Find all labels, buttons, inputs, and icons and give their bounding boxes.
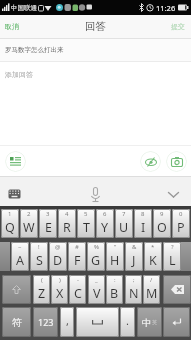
staticText: R (63, 219, 71, 236)
staticText: G (91, 252, 101, 269)
staticText: 0 (179, 210, 183, 218)
staticText: @ (55, 243, 61, 251)
staticText: 英 (152, 319, 157, 325)
staticText: F (74, 252, 81, 269)
staticText: / (150, 276, 153, 284)
staticText: V (93, 285, 101, 302)
button[interactable]: 0 (172, 209, 190, 238)
staticText: 符 (12, 316, 22, 329)
staticText: 中 (142, 317, 151, 328)
staticText: O (157, 219, 167, 236)
staticText: Q (5, 219, 15, 236)
staticText: ( (41, 276, 43, 284)
staticText: W (23, 219, 35, 236)
button[interactable] (163, 275, 191, 304)
button[interactable]: % (87, 242, 105, 271)
staticText: 8 (141, 210, 145, 218)
staticText: 5 (84, 210, 88, 218)
button[interactable]: 9 (153, 209, 171, 238)
staticText: . (126, 313, 129, 328)
button[interactable]: / (143, 275, 160, 304)
staticText: B (110, 285, 119, 302)
staticText: E (45, 219, 52, 236)
staticText: % (94, 243, 99, 251)
staticText: 1 (8, 210, 12, 218)
staticText: S (36, 252, 43, 269)
staticText: A (16, 252, 24, 269)
button[interactable] (166, 151, 187, 172)
staticText: 6 (103, 210, 107, 218)
staticText: 2 (27, 210, 31, 218)
staticText: : (114, 276, 116, 284)
button[interactable]: ( (33, 275, 50, 304)
button[interactable]: ? (163, 242, 181, 271)
staticText: J (132, 252, 136, 269)
staticText: 7 (122, 210, 126, 218)
button[interactable] (0, 177, 27, 206)
staticText: 3 (46, 210, 50, 218)
staticText: 9 (160, 210, 164, 218)
staticText: , (66, 313, 69, 328)
button[interactable]: 7 (115, 209, 133, 238)
button[interactable]: _ (88, 275, 105, 304)
staticText: ! (38, 243, 40, 251)
button[interactable]: 取消 (0, 15, 25, 38)
staticText: " (114, 243, 117, 251)
button[interactable] (5, 151, 26, 172)
button[interactable] (163, 307, 190, 337)
button[interactable]: ! (30, 242, 48, 271)
staticText: 添加回答 (5, 70, 33, 79)
button[interactable]: 5 (77, 209, 95, 238)
staticText: L (169, 252, 176, 269)
staticText: P (177, 219, 185, 236)
button[interactable]: & (125, 242, 143, 271)
button[interactable]: - (69, 275, 86, 304)
button[interactable]: : (106, 275, 123, 304)
button[interactable]: " (106, 242, 124, 271)
staticText: C (74, 285, 82, 302)
staticText: T (83, 219, 90, 236)
button[interactable]: 1 (1, 209, 19, 238)
button[interactable] (76, 307, 119, 337)
staticText: H (110, 252, 120, 269)
button[interactable]: , (60, 307, 74, 337)
button[interactable]: 4 (58, 209, 76, 238)
button[interactable] (140, 151, 161, 172)
button[interactable]: 123 (33, 307, 58, 337)
staticText: U (119, 219, 129, 236)
staticText: D (53, 252, 63, 269)
button[interactable]: ~ (11, 242, 29, 271)
button[interactable]: 符 (2, 307, 31, 337)
button[interactable]: 6 (96, 209, 114, 238)
button[interactable]: 2 (20, 209, 38, 238)
staticText: & (132, 243, 137, 251)
button[interactable] (2, 275, 31, 304)
staticText: ) (59, 276, 61, 284)
staticText: 提交 (171, 22, 185, 31)
staticText: * (151, 243, 155, 251)
button[interactable]: 8 (134, 209, 152, 238)
staticText: I (141, 219, 146, 236)
staticText: M (146, 285, 158, 302)
staticText: - (77, 276, 79, 284)
button[interactable]: @ (49, 242, 67, 271)
button[interactable]: # (68, 242, 86, 271)
staticText: ? (171, 243, 174, 251)
button[interactable] (80, 177, 111, 206)
button[interactable] (156, 177, 191, 206)
staticText: X (56, 285, 64, 302)
button[interactable]: 提交 (165, 15, 191, 38)
staticText: Z (38, 285, 46, 302)
button[interactable]: * (144, 242, 162, 271)
button[interactable]: ; (125, 275, 142, 304)
staticText: 罗马数字怎么打出来 (5, 46, 64, 54)
staticText: # (75, 243, 79, 251)
staticText: ~ (18, 243, 22, 251)
button[interactable]: . (120, 307, 135, 337)
button[interactable]: 中 (137, 307, 162, 337)
button[interactable]: 3 (39, 209, 57, 238)
staticText: 取消 (5, 22, 19, 31)
staticText: 11:26 (156, 3, 176, 13)
staticText: 回答 (85, 20, 106, 33)
button[interactable]: ) (51, 275, 68, 304)
